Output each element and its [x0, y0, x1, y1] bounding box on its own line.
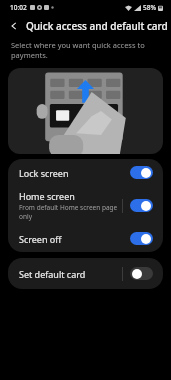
staticText: From default Home screen page only [19, 203, 122, 221]
button[interactable]: Set default card [8, 258, 163, 289]
staticText: Screen off [19, 233, 62, 245]
staticText: Home screen [19, 190, 75, 202]
button[interactable]: Off [130, 267, 153, 280]
button[interactable]: Screen off [8, 225, 163, 252]
button[interactable]: Lock screen [8, 159, 163, 186]
staticText: Select where you want quick access to pa… [11, 40, 147, 60]
staticText: Set default card [19, 268, 122, 280]
button[interactable]: On [130, 232, 153, 245]
button[interactable]: On [130, 199, 153, 212]
staticText: 58% [143, 3, 156, 12]
button[interactable]: On [130, 166, 153, 179]
staticText: 10:02 [10, 3, 27, 12]
button[interactable]: Back [5, 17, 23, 35]
staticText: Lock screen [19, 167, 69, 179]
staticText: Quick access and default card [26, 19, 168, 33]
button[interactable]: Home screen [8, 186, 163, 225]
